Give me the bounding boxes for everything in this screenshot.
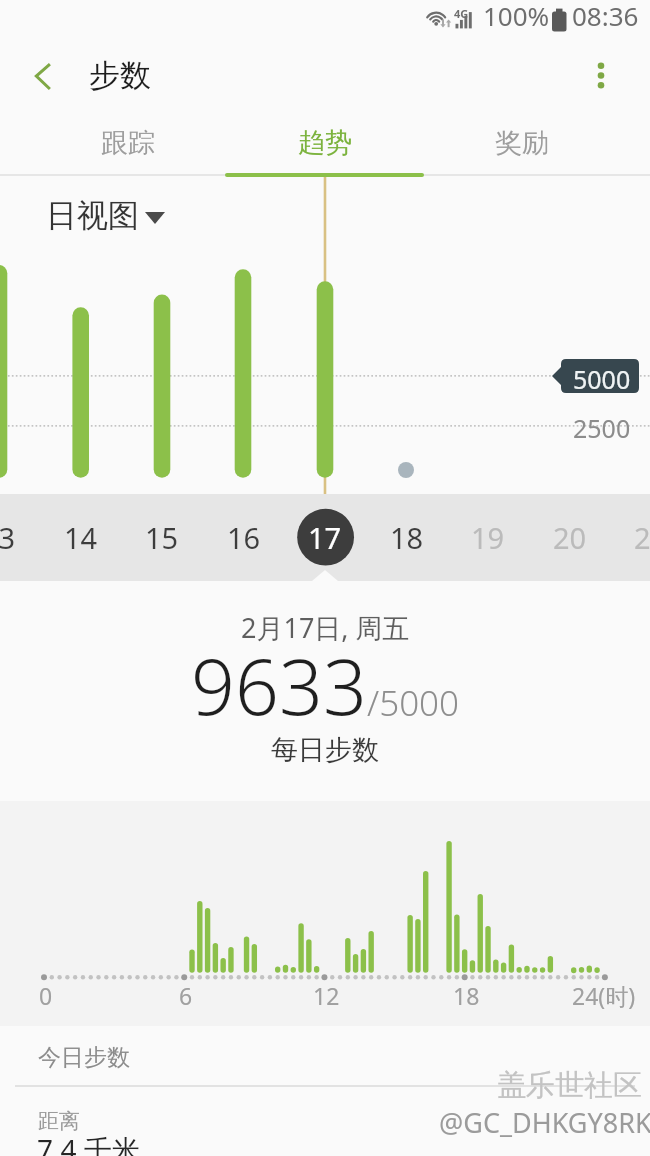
staticText: 17	[308, 518, 342, 557]
staticText: 奖励	[495, 126, 549, 160]
staticText: 24(时)	[572, 980, 636, 1011]
button[interactable]: 19	[452, 494, 524, 581]
button[interactable]: 今日步数	[0, 1026, 650, 1085]
button[interactable]: 跟踪	[30, 110, 226, 177]
staticText: 6	[179, 980, 193, 1011]
button[interactable]: 18	[371, 494, 443, 581]
staticText: 12	[313, 980, 340, 1011]
staticText: 5000	[573, 362, 631, 396]
staticText: 13	[0, 518, 16, 557]
button[interactable]: 20	[534, 494, 606, 581]
button[interactable]: 21	[615, 494, 650, 581]
button[interactable]: 趋势	[226, 110, 423, 177]
staticText: 步数	[89, 56, 151, 95]
staticText: 今日步数	[38, 1043, 130, 1072]
staticText: 距离	[38, 1108, 80, 1134]
staticText: 18	[453, 980, 480, 1011]
staticText: 21	[634, 518, 650, 557]
staticText: 15	[145, 518, 179, 557]
staticText: 跟踪	[101, 126, 155, 160]
staticText: 16	[227, 518, 261, 557]
button[interactable]: 17	[289, 494, 361, 581]
button[interactable]: 14	[45, 494, 117, 581]
staticText: 9633	[191, 633, 367, 738]
button[interactable]: Back	[14, 50, 68, 104]
button[interactable]: 距离	[0, 1087, 650, 1156]
staticText: 14	[64, 518, 98, 557]
staticText: 20	[553, 518, 587, 557]
staticText: 7.4 千米	[37, 1130, 140, 1156]
staticText: 日视图	[46, 196, 139, 235]
staticText: 趋势	[298, 126, 352, 160]
button[interactable]: 16	[208, 494, 280, 581]
staticText: /5000	[367, 679, 460, 727]
button[interactable]: More options	[574, 50, 628, 104]
staticText: 18	[390, 518, 424, 557]
staticText: 4G	[454, 6, 469, 21]
button[interactable]: 奖励	[423, 110, 620, 177]
staticText: 19	[471, 518, 505, 557]
button[interactable]: 13	[0, 494, 35, 581]
staticText: 0	[39, 980, 53, 1011]
staticText: 每日步数	[271, 733, 379, 767]
button[interactable]: 日视图	[40, 189, 173, 235]
button[interactable]: 15	[126, 494, 198, 581]
staticText: @GC_DHKGY8RK	[439, 1104, 650, 1141]
staticText: 100%	[483, 0, 550, 33]
staticText: 2500	[573, 411, 631, 445]
staticText: 2月17日, 周五	[241, 609, 410, 646]
staticText: 盖乐世社区	[497, 1067, 642, 1104]
staticText: 08:36	[572, 0, 639, 33]
